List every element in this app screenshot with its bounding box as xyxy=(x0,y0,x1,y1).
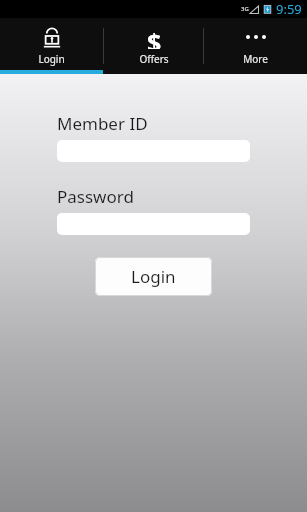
other: More xyxy=(245,25,267,49)
staticText: Offers xyxy=(139,52,169,66)
button[interactable]: Login xyxy=(95,257,212,296)
button[interactable]: More xyxy=(204,18,307,74)
staticText: 9:59 xyxy=(276,0,302,18)
staticText: 3G xyxy=(241,5,249,13)
staticText: Member ID xyxy=(57,112,148,135)
button[interactable]: Login xyxy=(0,18,103,74)
staticText: Login xyxy=(38,52,65,66)
button[interactable]: Offers xyxy=(104,18,203,74)
staticText: Login xyxy=(131,265,176,288)
staticText: More xyxy=(243,52,268,66)
staticText: $ xyxy=(147,25,162,49)
other: Login xyxy=(41,25,63,49)
staticText: Password xyxy=(57,185,134,208)
other: Offers xyxy=(143,25,165,49)
